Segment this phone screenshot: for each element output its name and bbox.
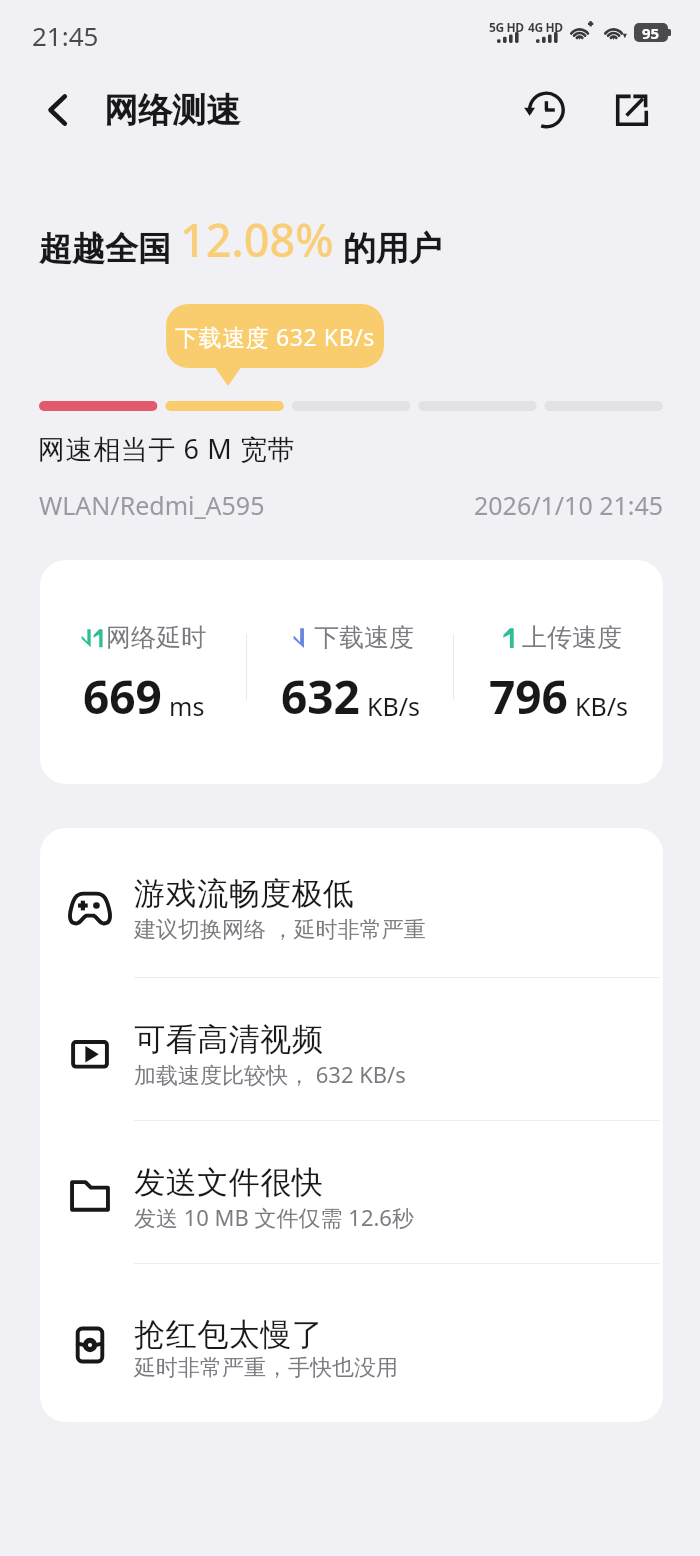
staticText: 下载速度 632 KB/s (175, 321, 375, 352)
staticText: KB/s (367, 689, 421, 723)
staticText: 632 (281, 665, 360, 728)
staticText: ms (169, 689, 205, 723)
staticText: 超越全国 (39, 228, 171, 270)
button[interactable]: 可看高清视频 (40, 977, 663, 1120)
staticText: 加载速度比较快， 632 KB/s (134, 1059, 406, 1089)
staticText: 796 (489, 665, 568, 728)
staticText: 95 (642, 23, 660, 42)
button[interactable]: 发送文件很快 (40, 1120, 663, 1263)
staticText: 可看高清视频 (134, 1020, 323, 1059)
staticText: KB/s (575, 689, 629, 723)
staticText: 21:45 (32, 18, 99, 53)
staticText: 网络测速 (104, 89, 240, 132)
staticText: 发送 10 MB 文件仅需 12.6秒 (134, 1202, 414, 1232)
staticText: 下载速度 (314, 622, 414, 653)
staticText: 12.08% (180, 209, 334, 270)
staticText: 游戏流畅度极低 (134, 874, 355, 913)
button[interactable]: Share (602, 80, 662, 140)
button[interactable]: 抢红包太慢了 (40, 1263, 663, 1421)
staticText: 669 (83, 665, 162, 728)
staticText: 延时非常严重，手快也没用 (134, 1354, 398, 1382)
staticText: 的用户 (343, 228, 442, 270)
staticText: 网速相当于 6 M 宽带 (38, 430, 296, 467)
staticText: 建议切换网络 ，延时非常严重 (134, 913, 426, 943)
staticText: 抢红包太慢了 (134, 1315, 323, 1354)
button[interactable]: History (514, 80, 574, 140)
staticText: 网络延时 (106, 622, 206, 653)
staticText: 上传速度 (522, 622, 622, 653)
staticText: 发送文件很快 (134, 1163, 323, 1202)
button[interactable]: Back (30, 82, 86, 138)
staticText: 5G HD (489, 19, 524, 35)
staticText: 2026/1/10 21:45 (474, 488, 664, 522)
button[interactable]: 游戏流畅度极低 (40, 828, 663, 977)
staticText: WLAN/Redmi_A595 (39, 488, 265, 522)
staticText: 4G HD (528, 19, 563, 35)
